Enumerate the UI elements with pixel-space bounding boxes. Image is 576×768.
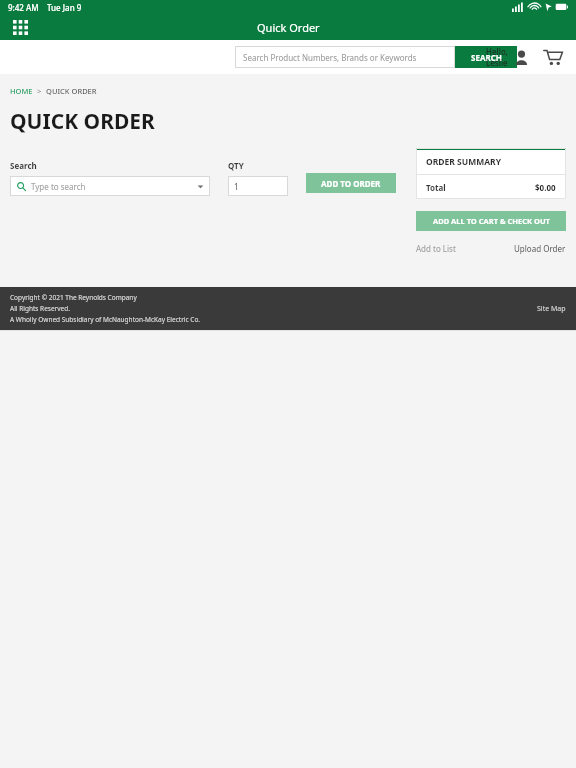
button[interactable]: SEARCH xyxy=(455,46,517,68)
button[interactable]: 1 xyxy=(228,176,288,196)
staticText: Hello, xyxy=(486,46,508,57)
staticText: A Wholly Owned Subsidiary of McNaughton-… xyxy=(10,315,201,324)
staticText: Leslie xyxy=(486,57,508,68)
button[interactable]: Search Product Numbers, Brands or Keywor… xyxy=(235,46,455,68)
staticText: QUICK ORDER xyxy=(46,86,97,96)
staticText: Search xyxy=(10,160,37,171)
staticText: Quick Order xyxy=(257,20,320,35)
button[interactable]: ADD TO ORDER xyxy=(306,173,396,193)
staticText: ORDER SUMMARY xyxy=(426,156,501,168)
staticText: ADD ALL TO CART & CHECK OUT xyxy=(433,216,550,226)
staticText: ADD TO ORDER xyxy=(321,178,381,189)
button[interactable]: HOME xyxy=(10,86,33,96)
staticText: QUICK ORDER xyxy=(10,107,155,136)
button[interactable]: Site Map xyxy=(537,304,566,314)
button[interactable]: Cart xyxy=(540,44,566,70)
staticText: Search Product Numbers, Brands or Keywor… xyxy=(243,52,417,63)
staticText: QTY xyxy=(228,160,244,171)
staticText: Type to search xyxy=(31,181,86,192)
button[interactable]: Add to List xyxy=(416,243,456,254)
button[interactable]: ADD ALL TO CART & CHECK OUT xyxy=(416,211,566,231)
staticText: Upload Order xyxy=(514,243,566,254)
button[interactable]: Hello, xyxy=(486,46,530,68)
staticText: > xyxy=(33,86,46,96)
staticText: All Rights Reserved. xyxy=(10,304,70,313)
staticText: SEARCH xyxy=(471,52,502,63)
staticText: Add to List xyxy=(416,243,456,254)
staticText: Total xyxy=(426,182,446,193)
button[interactable]: Menu xyxy=(8,15,32,39)
staticText: Copyright © 2021 The Reynolds Company xyxy=(10,293,137,302)
staticText: Tue Jan 9 xyxy=(47,2,82,13)
staticText: $0.00 xyxy=(535,182,556,193)
button[interactable]: Type to search xyxy=(10,176,210,196)
staticText: HOME xyxy=(10,86,33,96)
staticText: 9:42 AM xyxy=(8,2,39,13)
staticText: 1 xyxy=(234,181,239,192)
staticText: Site Map xyxy=(537,304,566,314)
button[interactable]: Upload Order xyxy=(514,243,566,254)
